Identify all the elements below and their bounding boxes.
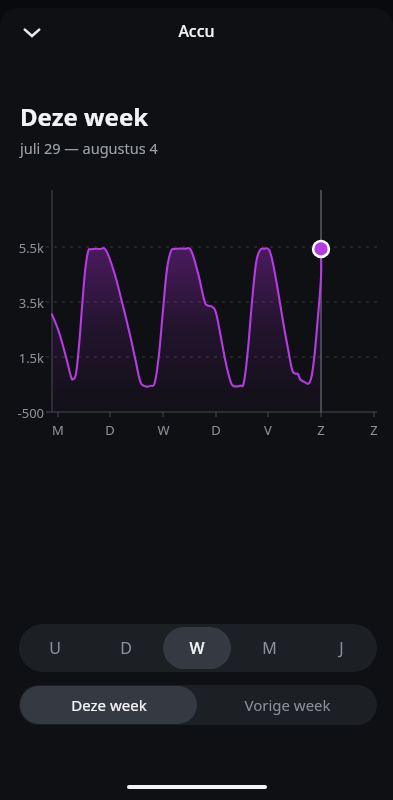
staticText: Accu: [178, 20, 215, 42]
staticText: D: [120, 637, 132, 659]
staticText: W: [157, 421, 170, 439]
staticText: juli 29 — augustus 4: [20, 138, 158, 158]
staticText: 1.5k: [18, 349, 44, 367]
staticText: 5.5k: [18, 239, 44, 257]
staticText: 3.5k: [18, 294, 44, 312]
staticText: -500: [17, 404, 44, 422]
button[interactable]: U: [21, 627, 88, 669]
staticText: U: [49, 637, 61, 659]
staticText: Z: [317, 421, 325, 439]
button[interactable]: Vorige week: [199, 686, 376, 724]
button[interactable]: Deze week: [20, 686, 197, 724]
staticText: M: [262, 637, 277, 659]
staticText: Deze week: [20, 100, 149, 133]
button[interactable]: Sluiten: [8, 8, 56, 56]
button[interactable]: W: [163, 627, 231, 669]
button[interactable]: J: [307, 627, 375, 669]
staticText: V: [264, 421, 272, 439]
staticText: M: [52, 421, 64, 439]
staticText: D: [105, 421, 115, 439]
staticText: Z: [370, 421, 378, 439]
staticText: D: [211, 421, 221, 439]
staticText: Deze week: [71, 695, 147, 715]
staticText: J: [339, 637, 344, 659]
staticText: Vorige week: [244, 695, 331, 715]
button[interactable]: D: [92, 627, 159, 669]
staticText: W: [189, 637, 205, 659]
button[interactable]: M: [235, 627, 303, 669]
